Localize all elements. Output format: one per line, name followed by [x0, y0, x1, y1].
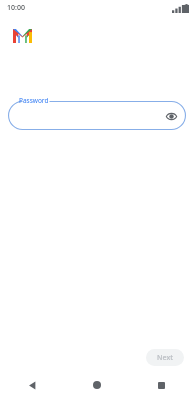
- button[interactable]: Next: [146, 349, 184, 366]
- button[interactable]: Back: [0, 372, 64, 398]
- staticText: Password: [19, 96, 49, 105]
- button[interactable]: Recent apps: [129, 372, 194, 398]
- button[interactable]: Show password: [162, 107, 180, 125]
- staticText: Next: [157, 353, 173, 363]
- staticText: 10:00: [7, 3, 25, 13]
- button[interactable]: Home: [64, 372, 129, 398]
- button[interactable]: [8, 101, 186, 130]
